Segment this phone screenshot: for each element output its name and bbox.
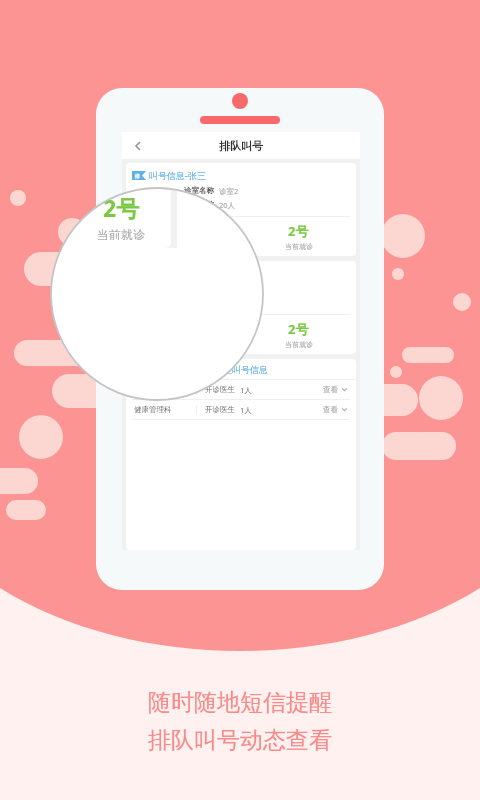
- staticText: 健康管理科: [134, 405, 196, 414]
- staticText: 我的序号: [170, 242, 198, 251]
- staticText: 10号: [170, 222, 198, 240]
- staticText: 当前就诊: [285, 242, 313, 251]
- staticText: 叫号信息-张三: [149, 169, 206, 181]
- button[interactable]: 神经内科一室...: [126, 380, 356, 399]
- staticText: 排队叫号动态查看: [148, 726, 332, 755]
- staticText: 候诊人数: [184, 200, 214, 209]
- staticText: 开诊医生: [205, 405, 235, 414]
- staticText: 1人: [240, 405, 252, 415]
- staticText: 诊室2: [219, 186, 239, 196]
- staticText: 科室叫号信息: [214, 364, 268, 375]
- staticText: 2号: [288, 320, 309, 338]
- staticText: 20人: [219, 200, 236, 210]
- staticText: 1人: [240, 385, 252, 395]
- staticText: 随时随地短信提醒: [148, 688, 332, 717]
- button[interactable]: 排: [126, 261, 356, 354]
- staticText: 查看: [323, 385, 338, 394]
- staticText: 当前就诊: [285, 340, 313, 349]
- staticText: 排: [135, 173, 140, 179]
- button[interactable]: 健康管理科: [126, 400, 356, 419]
- staticText: 当前就诊: [97, 227, 145, 240]
- staticText: 2号: [288, 222, 309, 240]
- staticText: 诊室名称: [184, 186, 214, 195]
- staticText: 开诊医生: [205, 385, 235, 394]
- staticText: 排队叫号: [219, 139, 263, 153]
- button[interactable]: 排: [126, 163, 356, 256]
- staticText: 2号: [103, 192, 140, 223]
- staticText: 查看: [323, 405, 338, 414]
- button[interactable]: 排队叫号: [122, 132, 360, 159]
- button[interactable]: Back: [128, 136, 148, 156]
- staticText: 神经内科一室...: [134, 385, 196, 395]
